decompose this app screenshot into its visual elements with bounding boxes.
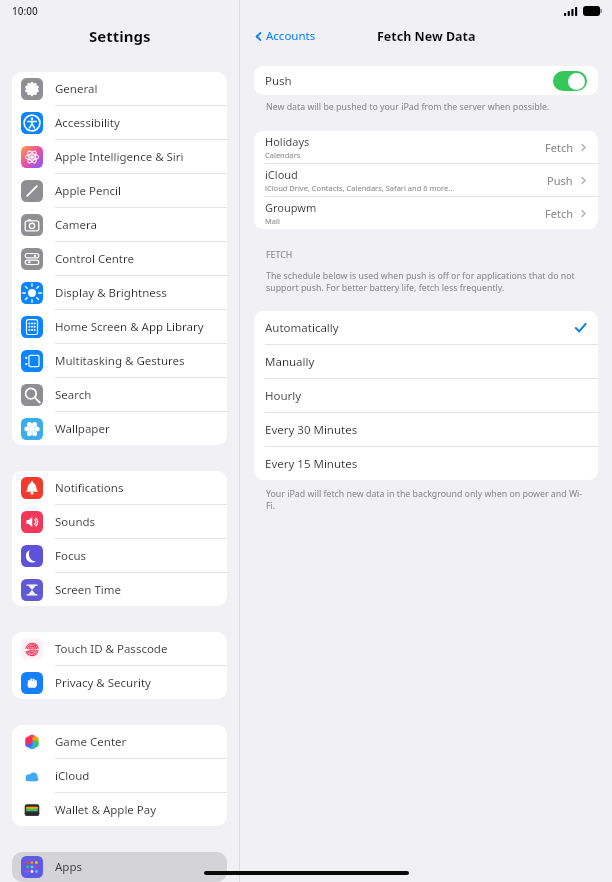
staticText: iCloud — [55, 768, 90, 784]
button[interactable]: Every 15 Minutes — [254, 447, 598, 480]
staticText: Push — [547, 173, 573, 188]
button[interactable]: Push — [254, 66, 598, 95]
staticText: iCloud — [265, 167, 298, 182]
button[interactable]: Groupwm — [254, 197, 598, 229]
button[interactable]: Control Centre — [12, 242, 227, 275]
button[interactable]: Automatically — [254, 311, 598, 345]
button[interactable]: Accessibility — [12, 106, 227, 139]
staticText: Multitasking & Gestures — [55, 353, 185, 369]
staticText: Search — [55, 387, 92, 403]
button[interactable]: General — [12, 72, 227, 105]
button[interactable]: Privacy & Security — [12, 666, 227, 699]
staticText: Every 15 Minutes — [265, 456, 587, 472]
staticText: Hourly — [265, 388, 587, 404]
staticText: Your iPad will fetch new data in the bac… — [266, 488, 586, 512]
staticText: Focus — [55, 548, 87, 564]
staticText: Mail — [265, 216, 280, 226]
button[interactable]: Screen Time — [12, 573, 227, 606]
staticText: Apps — [55, 859, 83, 875]
staticText: Home Screen & App Library — [55, 319, 204, 335]
staticText: Apple Pencil — [55, 183, 121, 199]
button[interactable]: Home Screen & App Library — [12, 310, 227, 343]
staticText: 10:00 — [12, 4, 38, 18]
staticText: Fetch — [545, 206, 573, 221]
button[interactable]: iCloud — [254, 164, 598, 197]
staticText: Screen Time — [55, 582, 122, 598]
staticText: Touch ID & Passcode — [55, 641, 168, 657]
button[interactable]: Touch ID & Passcode — [12, 632, 227, 665]
staticText: Sounds — [55, 514, 96, 530]
button[interactable]: Apple Intelligence & Siri — [12, 140, 227, 173]
button[interactable]: Every 30 Minutes — [254, 413, 598, 447]
button[interactable]: Wallet & Apple Pay — [12, 793, 227, 826]
staticText: Holidays — [265, 134, 310, 149]
staticText: Privacy & Security — [55, 675, 151, 691]
staticText: Game Center — [55, 734, 127, 750]
staticText: FETCH — [266, 249, 293, 261]
button[interactable]: Camera — [12, 208, 227, 241]
staticText: Fetch New Data — [377, 28, 476, 45]
button[interactable]: Notifications — [12, 471, 227, 504]
button[interactable]: Wallpaper — [12, 412, 227, 445]
button[interactable]: Manually — [254, 345, 598, 379]
staticText: Calendars — [265, 150, 301, 160]
staticText: Display & Brightness — [55, 285, 167, 301]
button[interactable]: Focus — [12, 539, 227, 572]
button[interactable]: Push toggle on — [553, 71, 587, 91]
button[interactable]: iCloud — [12, 759, 227, 792]
button[interactable]: Holidays — [254, 131, 598, 164]
staticText: Accessibility — [55, 115, 120, 131]
staticText: General — [55, 81, 98, 97]
button[interactable]: Search — [12, 378, 227, 411]
staticText: Manually — [265, 354, 587, 370]
button[interactable]: Apple Pencil — [12, 174, 227, 207]
staticText: Accounts — [266, 28, 316, 44]
staticText: Notifications — [55, 480, 124, 496]
button[interactable]: Sounds — [12, 505, 227, 538]
staticText: Apple Intelligence & Siri — [55, 149, 184, 165]
button[interactable]: Multitasking & Gestures — [12, 344, 227, 377]
staticText: The schedule below is used when push is … — [266, 270, 586, 294]
staticText: Settings — [89, 26, 151, 46]
staticText: Push — [265, 73, 292, 89]
staticText: Camera — [55, 217, 97, 233]
staticText: iCloud Drive, Contacts, Calendars, Safar… — [265, 183, 455, 193]
staticText: Automatically — [265, 320, 574, 336]
staticText: Wallpaper — [55, 421, 110, 437]
button[interactable]: Hourly — [254, 379, 598, 413]
button[interactable]: Accounts — [250, 25, 318, 47]
button[interactable]: Game Center — [12, 725, 227, 758]
button[interactable]: Apps — [12, 852, 227, 882]
button[interactable]: Display & Brightness — [12, 276, 227, 309]
staticText: Every 30 Minutes — [265, 422, 587, 438]
staticText: New data will be pushed to your iPad fro… — [266, 101, 550, 113]
staticText: Groupwm — [265, 200, 317, 215]
staticText: Wallet & Apple Pay — [55, 802, 157, 818]
staticText: Fetch — [545, 140, 573, 155]
staticText: Control Centre — [55, 251, 134, 267]
